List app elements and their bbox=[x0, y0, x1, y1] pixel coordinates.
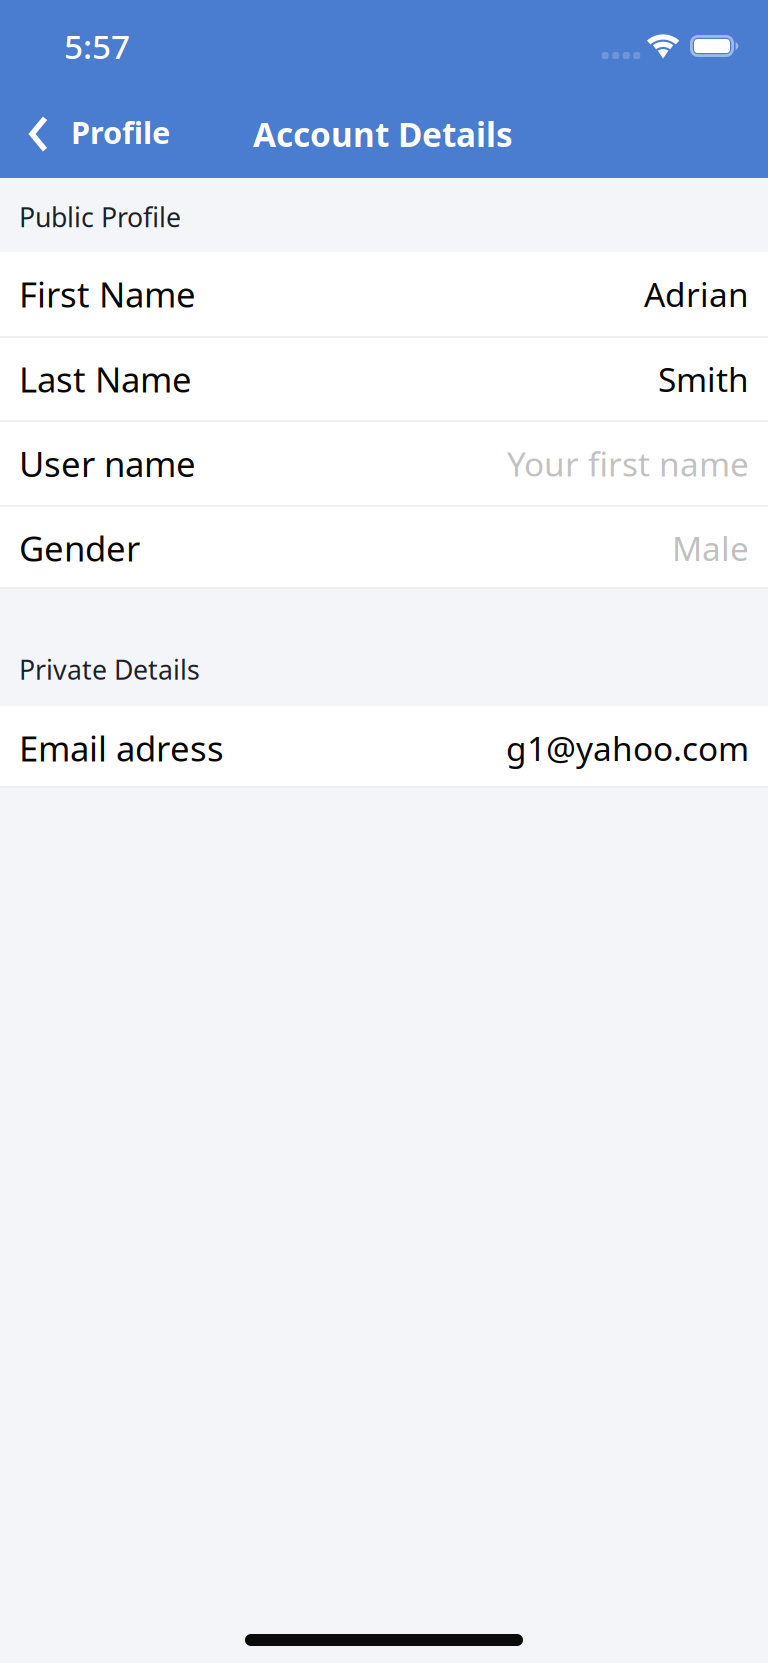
button[interactable]: First Name bbox=[0, 252, 768, 336]
staticText: Account Details bbox=[253, 112, 513, 156]
button[interactable]: Last Name bbox=[0, 338, 768, 420]
button[interactable]: Profile bbox=[0, 90, 188, 178]
button[interactable]: Email adress bbox=[0, 706, 768, 786]
staticText: Profile bbox=[71, 112, 170, 152]
staticText: Male bbox=[672, 526, 749, 570]
staticText: First Name bbox=[19, 271, 196, 317]
staticText: Last Name bbox=[19, 356, 192, 402]
button[interactable]: Gender bbox=[0, 507, 768, 587]
staticText: Email adress bbox=[19, 725, 224, 771]
button[interactable]: User name bbox=[0, 422, 768, 505]
staticText: Adrian bbox=[644, 272, 749, 316]
staticText: Your first name bbox=[507, 441, 749, 486]
staticText: Gender bbox=[19, 525, 140, 571]
staticText: Smith bbox=[658, 357, 749, 401]
staticText: g1@yahoo.com bbox=[506, 726, 749, 770]
staticText: User name bbox=[19, 440, 196, 486]
staticText: 5:57 bbox=[64, 24, 130, 68]
staticText: Private Details bbox=[19, 652, 200, 687]
staticText: Public Profile bbox=[19, 199, 181, 235]
